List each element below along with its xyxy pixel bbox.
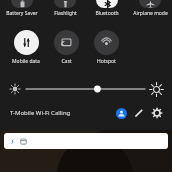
staticText: Cast bbox=[61, 58, 72, 65]
button[interactable]: Bluetooth bbox=[87, 0, 127, 17]
staticText: Battery Saver bbox=[6, 10, 38, 17]
button[interactable]: Settings bbox=[148, 104, 166, 122]
staticText: Hotspot bbox=[97, 58, 116, 65]
button[interactable]: Hotspot bbox=[86, 30, 126, 65]
staticText: Mobile data bbox=[12, 58, 40, 65]
button[interactable]: Battery Saver bbox=[2, 0, 42, 17]
button[interactable]: Edit tiles bbox=[130, 104, 148, 122]
button[interactable]: Airplane mode bbox=[130, 0, 170, 17]
staticText: T-Mobile Wi-Fi Calling bbox=[10, 109, 71, 117]
button[interactable]: Search bbox=[4, 133, 168, 149]
staticText: Flashlight bbox=[54, 10, 77, 17]
button[interactable]: Mobile data bbox=[6, 30, 46, 65]
button[interactable]: Flashlight bbox=[45, 0, 85, 17]
staticText: Bluetooth bbox=[95, 10, 119, 17]
staticText: Airplane mode bbox=[133, 10, 168, 17]
button[interactable]: Brightness bbox=[0, 78, 172, 100]
button[interactable]: User account bbox=[112, 104, 130, 122]
button[interactable]: Cast bbox=[46, 30, 86, 65]
